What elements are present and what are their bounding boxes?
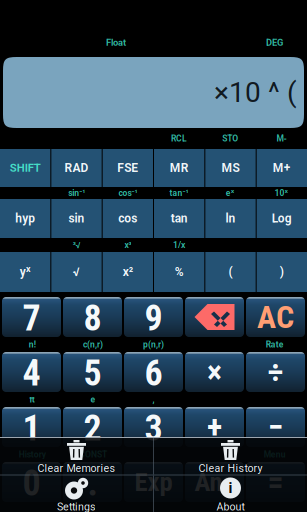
button[interactable]: SHIFT [0, 149, 50, 187]
staticText: = [267, 463, 283, 501]
button[interactable]: √ [51, 252, 102, 292]
staticText: 10ˣ [274, 188, 288, 198]
button[interactable]: 4 [2, 352, 61, 392]
staticText: tan [171, 211, 188, 226]
button[interactable]: × [185, 352, 244, 392]
button[interactable]: Ans [185, 462, 244, 502]
staticText: FSE [117, 161, 138, 175]
staticText: Clear History [198, 462, 262, 474]
button[interactable]: ) [257, 252, 307, 292]
staticText: cos [118, 211, 137, 226]
button[interactable]: 6 [124, 352, 183, 392]
button[interactable]: Exp [124, 462, 183, 502]
button[interactable]: % [154, 252, 204, 292]
button[interactable]: Clear History [154, 438, 307, 474]
staticText: About [216, 500, 244, 512]
staticText: RAD [64, 161, 88, 175]
staticText: e [90, 394, 95, 404]
staticText: RCL [171, 133, 187, 143]
button[interactable]: Clear Memories [0, 438, 153, 474]
staticText: 3 [144, 407, 162, 447]
staticText: SHIFT [10, 161, 41, 175]
staticText: 5 [83, 352, 101, 392]
button[interactable]: ln [205, 199, 256, 238]
staticText: M- [276, 133, 286, 143]
staticText: eˣ [226, 188, 235, 198]
staticText: Float [106, 37, 126, 48]
staticText: + [207, 408, 222, 446]
staticText: 1 [22, 407, 40, 447]
button[interactable]: tan [154, 199, 204, 238]
staticText: × [207, 353, 222, 391]
staticText: 9 [144, 297, 162, 337]
staticText: CONST [79, 449, 107, 459]
staticText: 7 [22, 297, 40, 337]
button[interactable]: 7 [2, 297, 61, 337]
button[interactable]: . [63, 462, 122, 502]
button[interactable]: 1 [2, 407, 61, 447]
button[interactable]: Log [257, 199, 307, 238]
button[interactable]: FSE [103, 149, 153, 187]
staticText: i [228, 479, 232, 497]
staticText: Menu [264, 449, 286, 459]
staticText: c(n,r) [83, 339, 103, 349]
staticText: tan⁻¹ [170, 188, 189, 198]
staticText: Settings [57, 500, 96, 512]
staticText: π [29, 394, 35, 404]
button[interactable]: 9 [124, 297, 183, 337]
staticText: sin [68, 211, 84, 226]
staticText: yˣ [20, 265, 31, 279]
staticText: √ [73, 265, 80, 279]
button[interactable]: cos [103, 199, 153, 238]
staticText: Clear Memories [37, 462, 115, 474]
staticText: 4 [22, 352, 40, 392]
staticText: MS [221, 161, 239, 175]
button[interactable]: 8 [63, 297, 122, 337]
staticText: Rate [266, 339, 284, 349]
button[interactable]: AC [246, 297, 305, 337]
staticText: 2 [83, 407, 101, 447]
button[interactable]: Settings [0, 475, 153, 512]
staticText: Ans [194, 466, 234, 498]
staticText: ) [280, 265, 284, 279]
button[interactable]: − [246, 407, 305, 447]
staticText: . [87, 462, 97, 502]
staticText: − [268, 408, 283, 446]
button[interactable]: Backspace [185, 297, 244, 337]
staticText: x² [123, 265, 133, 279]
button[interactable]: hyp [0, 199, 50, 238]
staticText: 8 [83, 297, 101, 337]
staticText: 6 [144, 352, 162, 392]
staticText: ( [228, 265, 232, 279]
staticText: ³√ [73, 240, 81, 250]
staticText: , [152, 394, 154, 404]
button[interactable]: = [246, 462, 305, 502]
button[interactable]: sin [51, 199, 102, 238]
staticText: ×10 ^ ( [214, 76, 297, 109]
staticText: History [19, 449, 46, 459]
staticText: MR [170, 161, 189, 175]
button[interactable]: yˣ [0, 252, 50, 292]
button[interactable]: M+ [257, 149, 307, 187]
button[interactable]: ÷ [246, 352, 305, 392]
button[interactable]: MS [205, 149, 256, 187]
button[interactable]: 2 [63, 407, 122, 447]
button[interactable]: MR [154, 149, 204, 187]
button[interactable]: 0 [2, 462, 61, 502]
staticText: x³ [124, 240, 131, 250]
staticText: 1/x [173, 240, 185, 250]
staticText: ln [225, 211, 235, 226]
button[interactable]: ( [205, 252, 256, 292]
button[interactable]: 5 [63, 352, 122, 392]
staticText: Log [272, 211, 292, 226]
button[interactable]: 3 [124, 407, 183, 447]
staticText: 0 [22, 462, 40, 502]
button[interactable]: x² [103, 252, 153, 292]
staticText: sin⁻¹ [68, 188, 85, 198]
staticText: Exp [134, 466, 172, 498]
button[interactable]: i [154, 475, 307, 512]
staticText: M+ [273, 161, 291, 175]
button[interactable]: RAD [51, 149, 102, 187]
staticText: hyp [15, 211, 35, 226]
button[interactable]: + [185, 407, 244, 447]
